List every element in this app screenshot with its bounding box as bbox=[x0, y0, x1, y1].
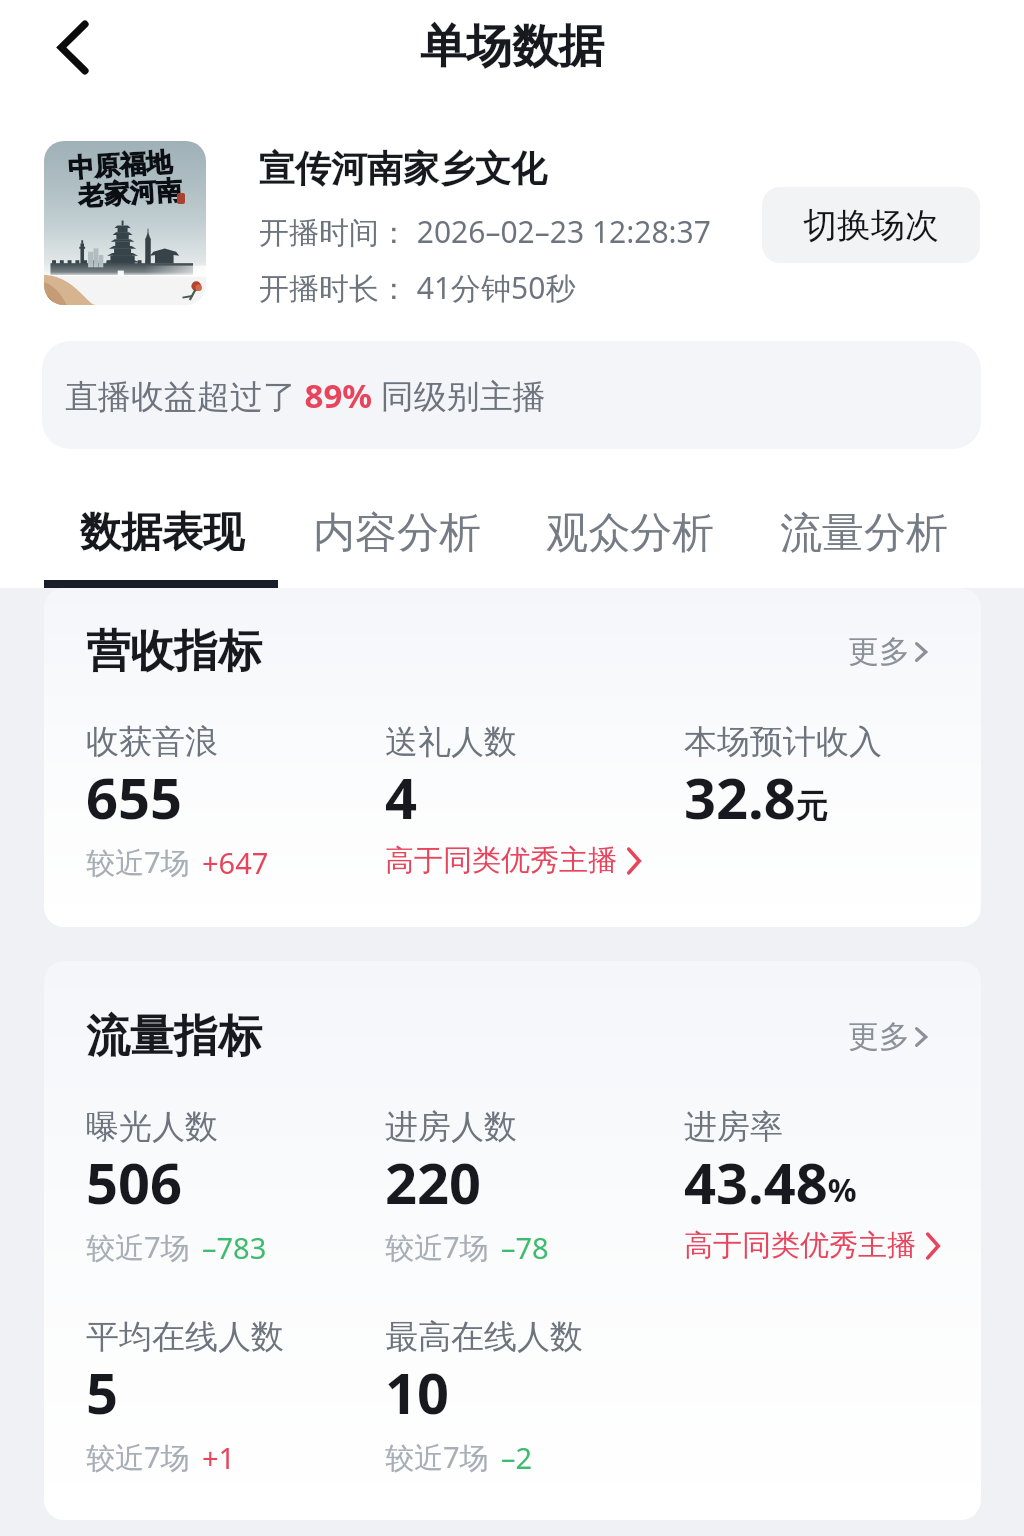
staticText: 进房人数 bbox=[385, 1106, 517, 1148]
button[interactable]: 高于同类优秀主播 bbox=[684, 1227, 944, 1264]
staticText: 更多 bbox=[848, 1017, 910, 1056]
button[interactable]: 观众分析 bbox=[510, 478, 748, 588]
staticText: 中原福地 bbox=[67, 146, 173, 185]
button[interactable]: 切换场次 bbox=[762, 187, 980, 263]
staticText: 本场预计收入 bbox=[684, 721, 882, 763]
button[interactable]: 更多 bbox=[848, 632, 932, 671]
staticText: 5 bbox=[86, 1354, 119, 1430]
staticText: –783 bbox=[202, 1228, 267, 1267]
staticText: 开播时间： 2026–02–23 12:28:37 bbox=[259, 211, 711, 252]
button[interactable]: 高于同类优秀主播 bbox=[385, 842, 645, 879]
button[interactable]: 数据表现 bbox=[44, 478, 282, 588]
staticText: 进房率 bbox=[684, 1106, 783, 1148]
staticText: 43.48% bbox=[684, 1144, 857, 1220]
staticText: –2 bbox=[501, 1438, 533, 1477]
staticText: 观众分析 bbox=[546, 507, 714, 560]
staticText: 最高在线人数 bbox=[385, 1316, 583, 1358]
button[interactable]: Back bbox=[38, 12, 108, 82]
staticText: 数据表现 bbox=[80, 507, 244, 559]
staticText: 曝光人数 bbox=[86, 1106, 218, 1148]
staticText: 单场数据 bbox=[420, 18, 604, 76]
staticText: 10 bbox=[385, 1354, 450, 1430]
staticText: 较近7场 bbox=[86, 842, 190, 882]
staticText: 老家河南 bbox=[77, 174, 183, 213]
staticText: 220 bbox=[385, 1144, 482, 1220]
button[interactable]: 流量分析 bbox=[744, 478, 982, 588]
staticText: 更多 bbox=[848, 632, 910, 671]
staticText: 506 bbox=[86, 1144, 183, 1220]
staticText: 开播时长： 41分钟50秒 bbox=[259, 267, 576, 308]
staticText: 较近7场 bbox=[385, 1437, 489, 1477]
staticText: 内容分析 bbox=[313, 507, 481, 560]
staticText: 4 bbox=[385, 759, 418, 835]
staticText: 655 bbox=[86, 759, 183, 835]
button[interactable]: 内容分析 bbox=[277, 478, 515, 588]
staticText: 切换场次 bbox=[803, 204, 939, 247]
staticText: 营收指标 bbox=[86, 624, 262, 679]
staticText: 较近7场 bbox=[86, 1437, 190, 1477]
staticText: 32.8元 bbox=[684, 759, 828, 835]
staticText: –78 bbox=[501, 1228, 549, 1267]
staticText: 宣传河南家乡文化 bbox=[259, 146, 547, 191]
staticText: 较近7场 bbox=[385, 1227, 489, 1267]
staticText: 直播收益超过了 89% 同级别主播 bbox=[65, 373, 546, 418]
staticText: 流量分析 bbox=[780, 507, 948, 560]
button[interactable]: 更多 bbox=[848, 1017, 932, 1056]
staticText: 收获音浪 bbox=[86, 721, 218, 763]
staticText: 高于同类优秀主播 bbox=[684, 1227, 916, 1264]
staticText: +647 bbox=[202, 843, 269, 882]
staticText: 流量指标 bbox=[86, 1009, 262, 1064]
staticText: 平均在线人数 bbox=[86, 1316, 284, 1358]
staticText: 较近7场 bbox=[86, 1227, 190, 1267]
staticText: 高于同类优秀主播 bbox=[385, 842, 617, 879]
staticText: 送礼人数 bbox=[385, 721, 517, 763]
staticText: +1 bbox=[202, 1438, 236, 1477]
